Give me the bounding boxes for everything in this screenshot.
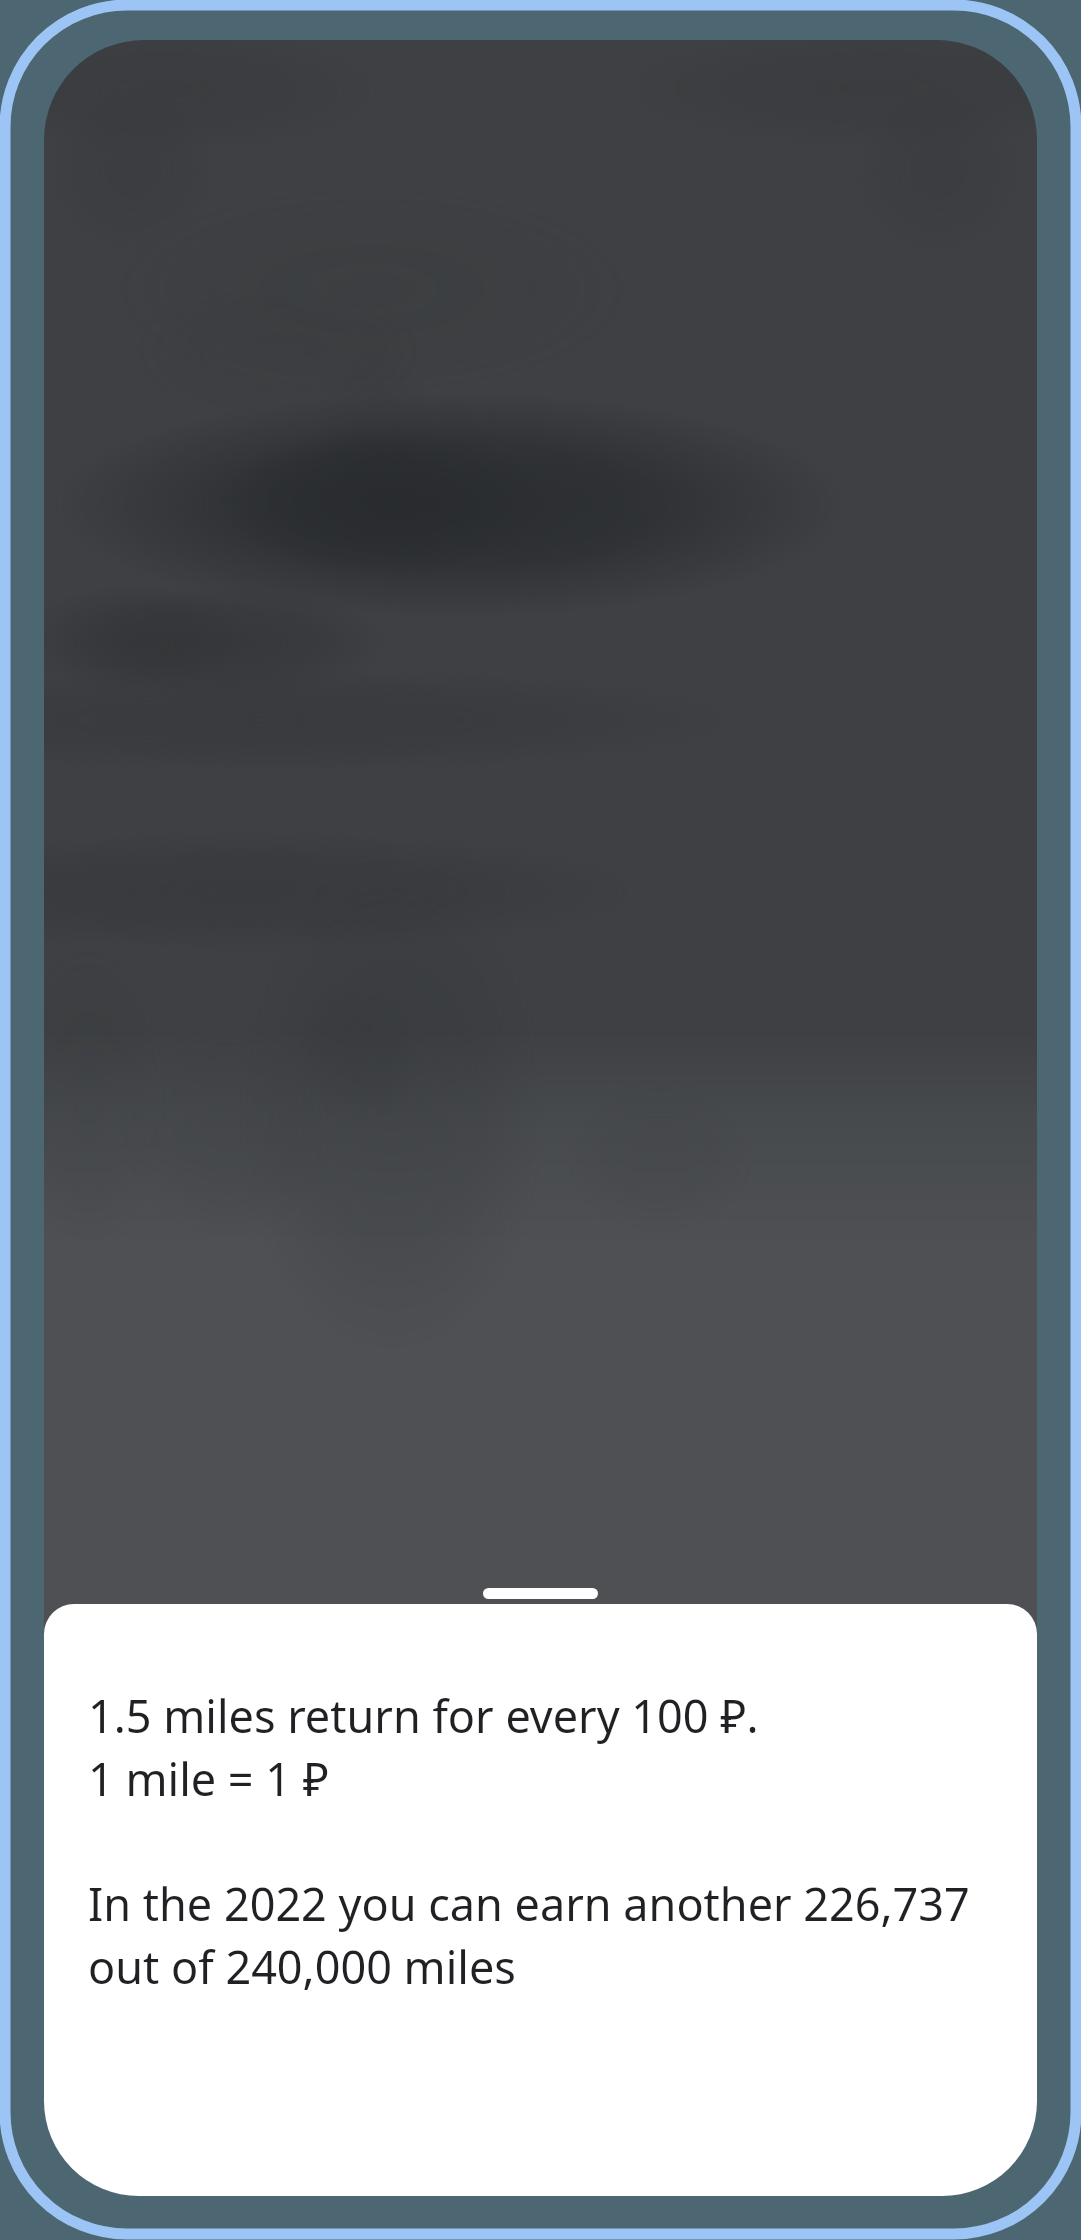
staticText: 1.5 miles return for every 100 ₽. 1 mile… [88, 1685, 759, 1810]
button[interactable]: 1.5 miles return for every 100 ₽. 1 mile… [44, 1604, 1037, 2196]
button[interactable]: Drag handle [483, 1588, 598, 1599]
staticText: In the 2022 you can earn another 226,737… [88, 1873, 970, 1998]
